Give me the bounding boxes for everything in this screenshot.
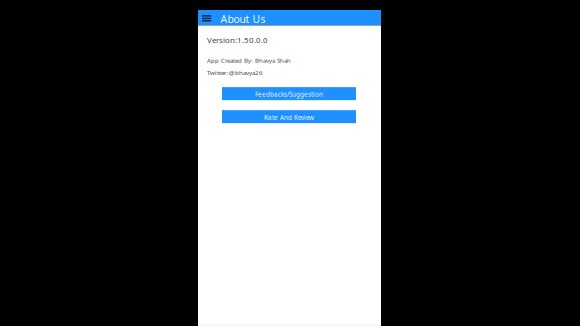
- staticText: Feedbacks/Suggestion: [255, 90, 323, 99]
- staticText: App Created By: Bhavya Shah: [207, 56, 291, 64]
- button[interactable]: Feedbacks/Suggestion: [222, 87, 356, 100]
- staticText: About Us: [221, 12, 266, 26]
- staticText: Twitter:@bhavya26: [207, 68, 263, 77]
- staticText: Version:1.50.0.0: [207, 34, 268, 45]
- staticText: Rate And Review: [264, 113, 314, 122]
- button[interactable]: Rate And Review: [222, 110, 356, 123]
- button[interactable]: Menu: [198, 10, 215, 25]
